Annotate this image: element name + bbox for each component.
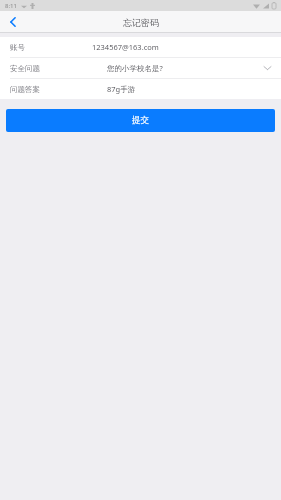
staticText: 忘记密码	[123, 17, 159, 28]
staticText: 账号	[10, 43, 25, 52]
button[interactable]: 安全问题	[0, 58, 281, 78]
staticText: 问题答案	[10, 85, 40, 94]
staticText: 您的小学校名是?	[107, 63, 163, 73]
button[interactable]: 提交	[6, 109, 275, 132]
staticText: 1234567@163.com	[92, 42, 159, 52]
button[interactable]: 问题答案	[0, 79, 281, 99]
staticText: 提交	[132, 115, 149, 126]
staticText: 安全问题	[10, 64, 40, 73]
button[interactable]: 返回	[0, 11, 26, 33]
button[interactable]: 账号	[0, 37, 281, 57]
staticText: 8:11	[5, 2, 17, 10]
staticText: 87g手游	[107, 84, 136, 94]
button[interactable]: 展开选择	[261, 62, 273, 74]
